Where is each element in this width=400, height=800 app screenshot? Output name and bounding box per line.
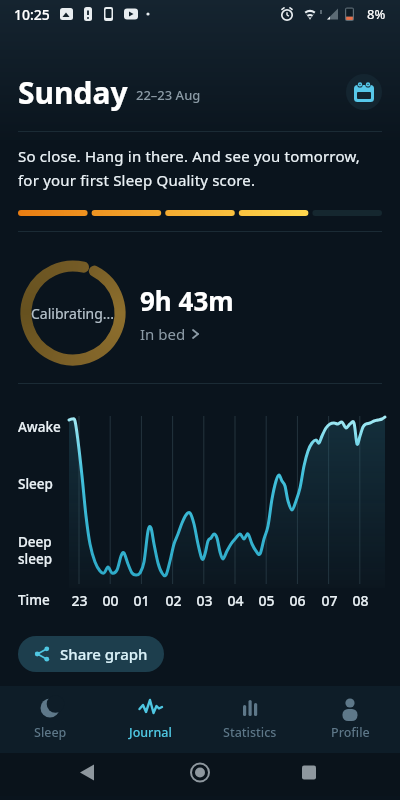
staticText: So close. Hang in there. And see you tom…	[18, 146, 361, 190]
staticText: 05	[258, 591, 275, 610]
button[interactable]	[346, 74, 382, 110]
staticText: 10:25	[14, 5, 50, 24]
staticText: 02	[165, 591, 182, 610]
button[interactable]: Statistics	[200, 686, 300, 753]
staticText: 07	[321, 591, 338, 610]
staticText: Profile	[331, 724, 370, 741]
button[interactable]: Sleep	[0, 686, 100, 753]
staticText: In bed	[140, 324, 186, 344]
staticText: 06	[289, 591, 306, 610]
button[interactable]: Share graph	[18, 636, 164, 672]
staticText: 04	[227, 591, 244, 610]
button[interactable]	[278, 753, 342, 796]
staticText: Sunday	[18, 72, 128, 113]
staticText: 23	[71, 591, 88, 610]
button[interactable]	[168, 753, 232, 796]
staticText: 22–23 Aug	[136, 86, 201, 104]
button[interactable]: 9h 43m	[140, 283, 234, 344]
staticText: Deep sleep	[18, 533, 53, 568]
button[interactable]	[58, 753, 122, 796]
button[interactable]: Profile	[300, 686, 400, 753]
staticText: 01	[133, 591, 150, 610]
staticText: Statistics	[223, 724, 277, 741]
staticText: 00	[102, 591, 119, 610]
staticText: Share graph	[60, 644, 148, 664]
staticText: 8%	[367, 5, 386, 23]
staticText: Sleep	[34, 724, 67, 741]
staticText: 9h 43m	[140, 283, 234, 318]
staticText: Sleep	[18, 475, 53, 493]
staticText: Time	[18, 591, 50, 609]
staticText: 08	[352, 591, 369, 610]
button[interactable]: Journal	[100, 686, 200, 753]
staticText: 03	[196, 591, 213, 610]
staticText: Calibrating...	[31, 304, 115, 323]
staticText: Awake	[18, 418, 61, 436]
staticText: Journal	[129, 724, 172, 741]
